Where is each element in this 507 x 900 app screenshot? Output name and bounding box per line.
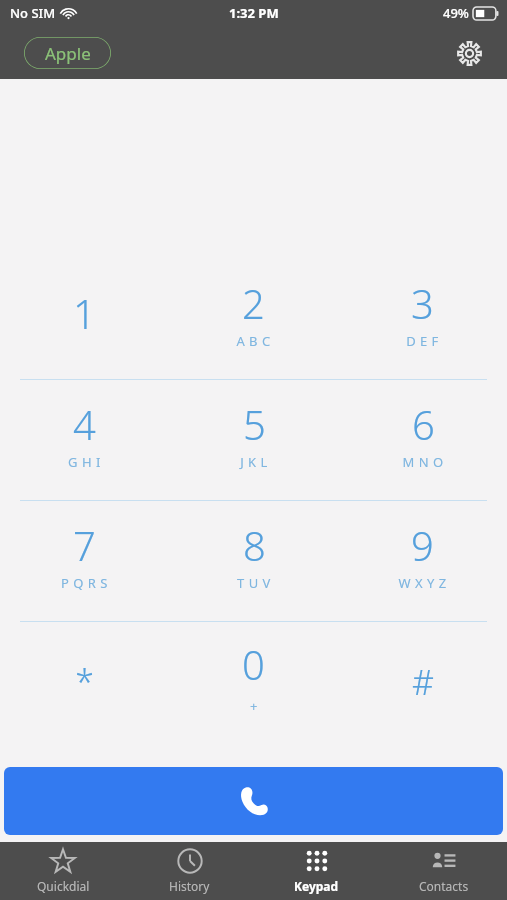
staticText: 5 xyxy=(243,397,266,451)
staticText: No SIM xyxy=(10,4,56,22)
staticText: 0 xyxy=(242,637,265,691)
staticText: 1:32 PM xyxy=(229,4,279,22)
staticText: # xyxy=(412,659,434,705)
button[interactable]: * xyxy=(0,622,169,742)
staticText: Apple xyxy=(45,42,91,65)
staticText: Quickdial xyxy=(37,878,90,894)
staticText: T U V xyxy=(237,574,271,592)
staticText: History xyxy=(169,878,210,894)
staticText: M N O xyxy=(402,453,444,471)
button[interactable]: 9 xyxy=(338,501,507,621)
staticText: D E F xyxy=(406,332,439,350)
button[interactable]: 8 xyxy=(169,501,338,621)
button[interactable]: History xyxy=(126,842,253,900)
staticText: 1 xyxy=(73,286,96,340)
staticText: 9 xyxy=(411,518,434,572)
staticText: 7 xyxy=(73,518,96,572)
button[interactable]: Apple xyxy=(23,36,112,70)
staticText: * xyxy=(75,659,94,705)
staticText: P Q R S xyxy=(61,574,108,592)
button[interactable]: 3 xyxy=(338,259,507,379)
button[interactable]: Contacts xyxy=(380,842,507,900)
staticText: 8 xyxy=(243,518,266,572)
button[interactable]: 4 xyxy=(0,380,169,500)
button[interactable]: Keypad xyxy=(253,842,380,900)
button[interactable]: 0 xyxy=(169,622,338,742)
staticText: J K L xyxy=(240,453,268,471)
staticText: + xyxy=(250,697,258,715)
button[interactable]: Call xyxy=(4,767,503,835)
button[interactable]: 2 xyxy=(169,259,338,379)
staticText: G H I xyxy=(68,453,101,471)
staticText: 3 xyxy=(411,276,434,330)
button[interactable]: 6 xyxy=(338,380,507,500)
staticText: Keypad xyxy=(294,878,339,894)
button[interactable]: 1 xyxy=(0,259,169,379)
staticText: 6 xyxy=(412,397,435,451)
button[interactable]: # xyxy=(338,622,507,742)
button[interactable]: Quickdial xyxy=(0,842,126,900)
staticText: 49% xyxy=(443,4,469,22)
button[interactable]: Settings xyxy=(449,33,489,73)
staticText: A B C xyxy=(236,332,271,350)
staticText: 2 xyxy=(242,276,265,330)
button[interactable]: 5 xyxy=(169,380,338,500)
staticText: W X Y Z xyxy=(398,574,447,592)
staticText: Contacts xyxy=(419,878,469,894)
button[interactable]: 7 xyxy=(0,501,169,621)
staticText: 4 xyxy=(73,397,96,451)
